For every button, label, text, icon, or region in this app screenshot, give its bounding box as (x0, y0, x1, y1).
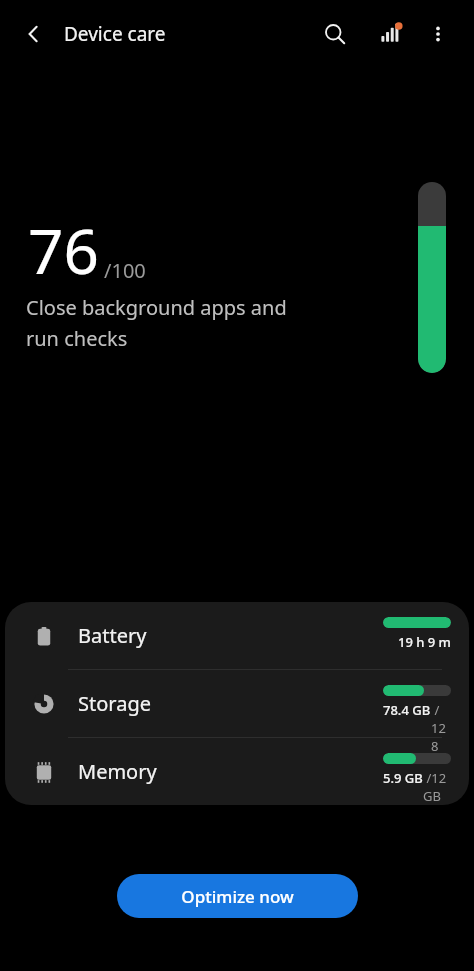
staticText: Close background apps and run checks (26, 294, 386, 351)
staticText: /12 GB (423, 769, 451, 805)
staticText: 78.4 GB (383, 701, 431, 719)
button[interactable]: Memory (5, 738, 469, 805)
staticText: /100 (104, 257, 146, 284)
staticText: 76 (28, 208, 99, 292)
staticText: Battery (78, 622, 147, 649)
staticText: Device care (64, 21, 166, 47)
button[interactable]: Storage (5, 670, 469, 737)
button[interactable]: Network status (371, 14, 411, 54)
button[interactable]: Search (315, 14, 355, 54)
staticText: Optimize now (181, 885, 294, 908)
button[interactable]: Battery (5, 602, 469, 669)
button[interactable]: Optimize now (117, 874, 358, 918)
staticText: 19 h 9 m (398, 633, 451, 651)
staticText: Storage (78, 690, 151, 717)
staticText: 5.9 GB (383, 769, 423, 787)
button[interactable]: More options (418, 14, 458, 54)
button[interactable]: Back (14, 14, 54, 54)
staticText: Memory (78, 758, 157, 785)
staticText: /128 GB (431, 701, 451, 752)
